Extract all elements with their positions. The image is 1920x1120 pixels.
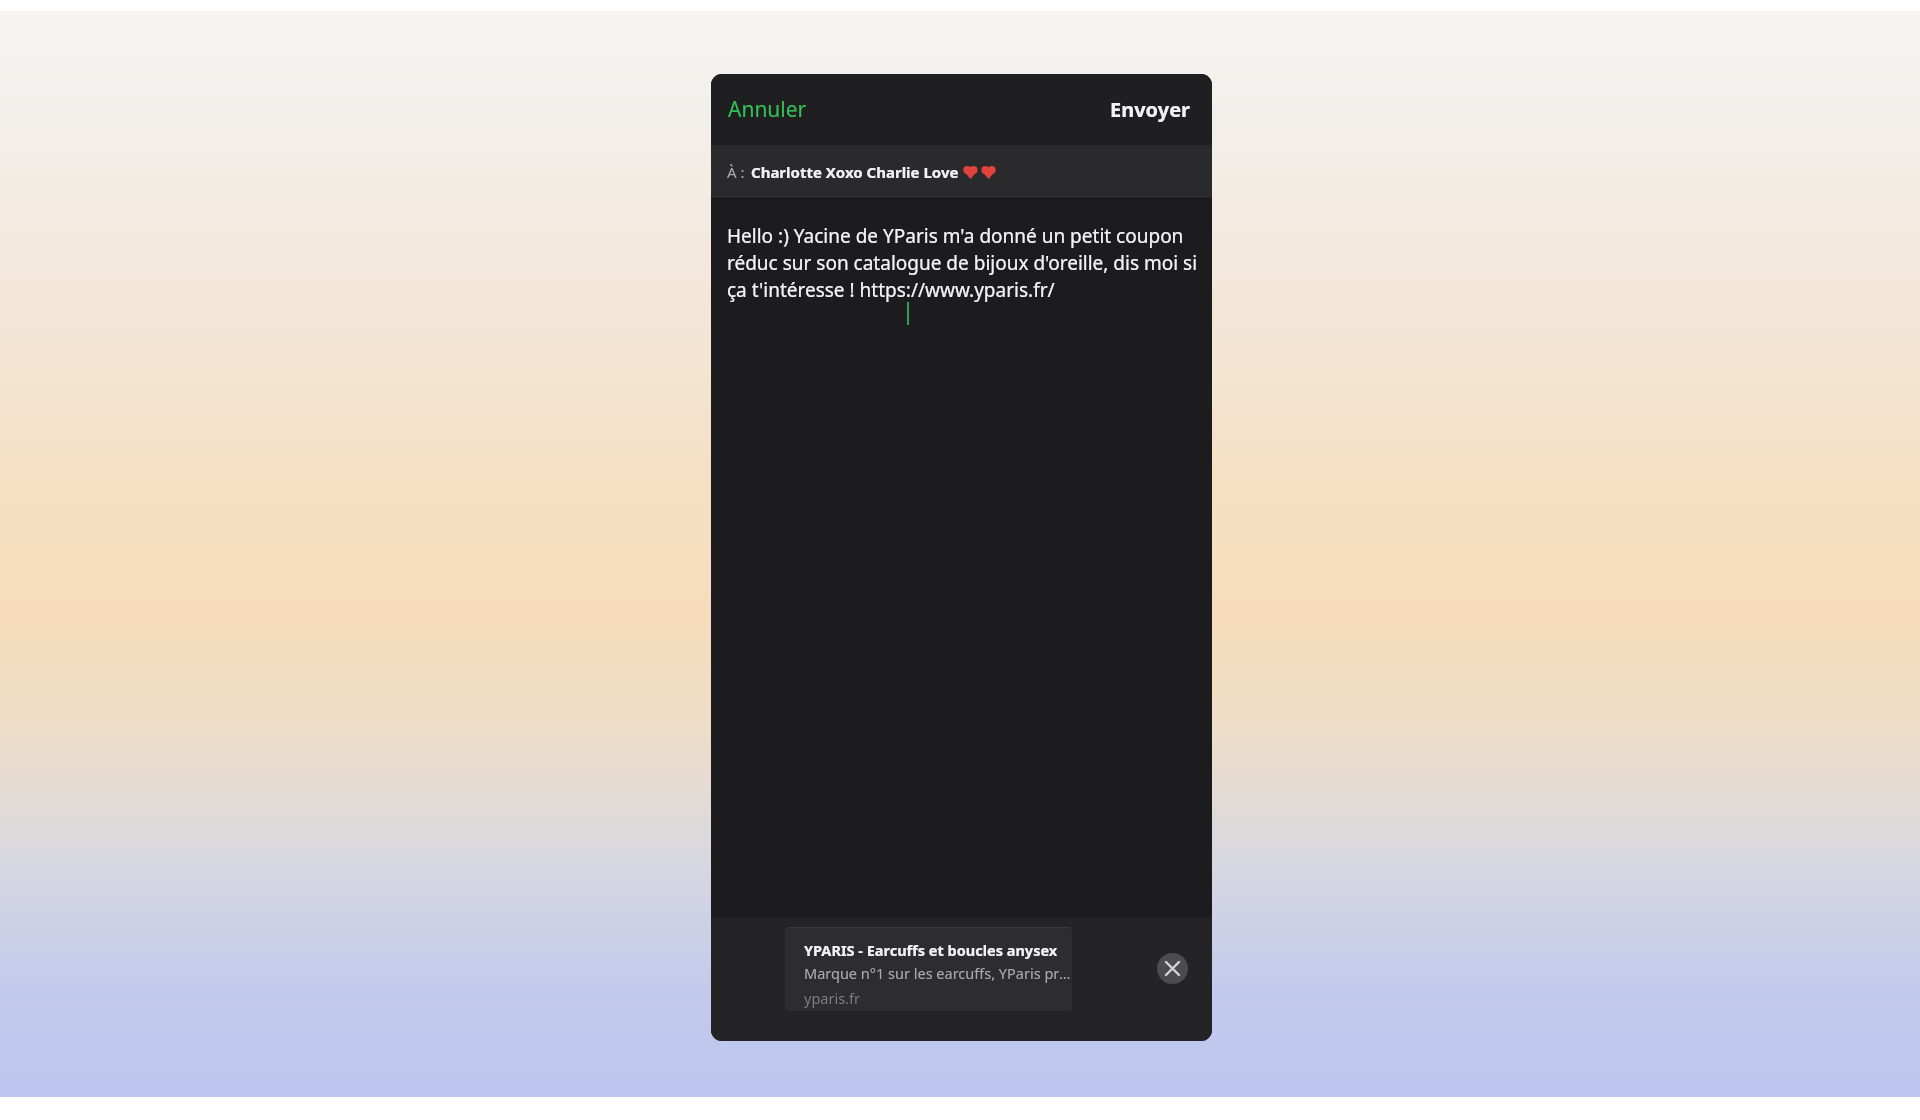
staticText: À : (727, 162, 745, 182)
button[interactable]: Annuler (717, 89, 818, 130)
staticText: yparis.fr (804, 988, 860, 1008)
button[interactable]: YPARIS - Earcuffs et boucles anysex (785, 927, 1072, 1011)
staticText: Marque n°1 sur les earcuffs, YParis prop… (804, 963, 1072, 983)
staticText: Hello :) Yacine de YParis m'a donné un p… (727, 223, 1198, 302)
button[interactable]: À : (711, 145, 1212, 199)
staticText: Annuler (728, 95, 807, 124)
staticText: Envoyer (1110, 96, 1191, 123)
staticText: YPARIS - Earcuffs et boucles anysex (804, 940, 1058, 960)
button[interactable]: Supprimer l'aperçu du lien (1157, 953, 1188, 984)
staticText: Charlotte Xoxo Charlie Love (751, 162, 963, 182)
button[interactable]: Envoyer (1099, 90, 1202, 129)
